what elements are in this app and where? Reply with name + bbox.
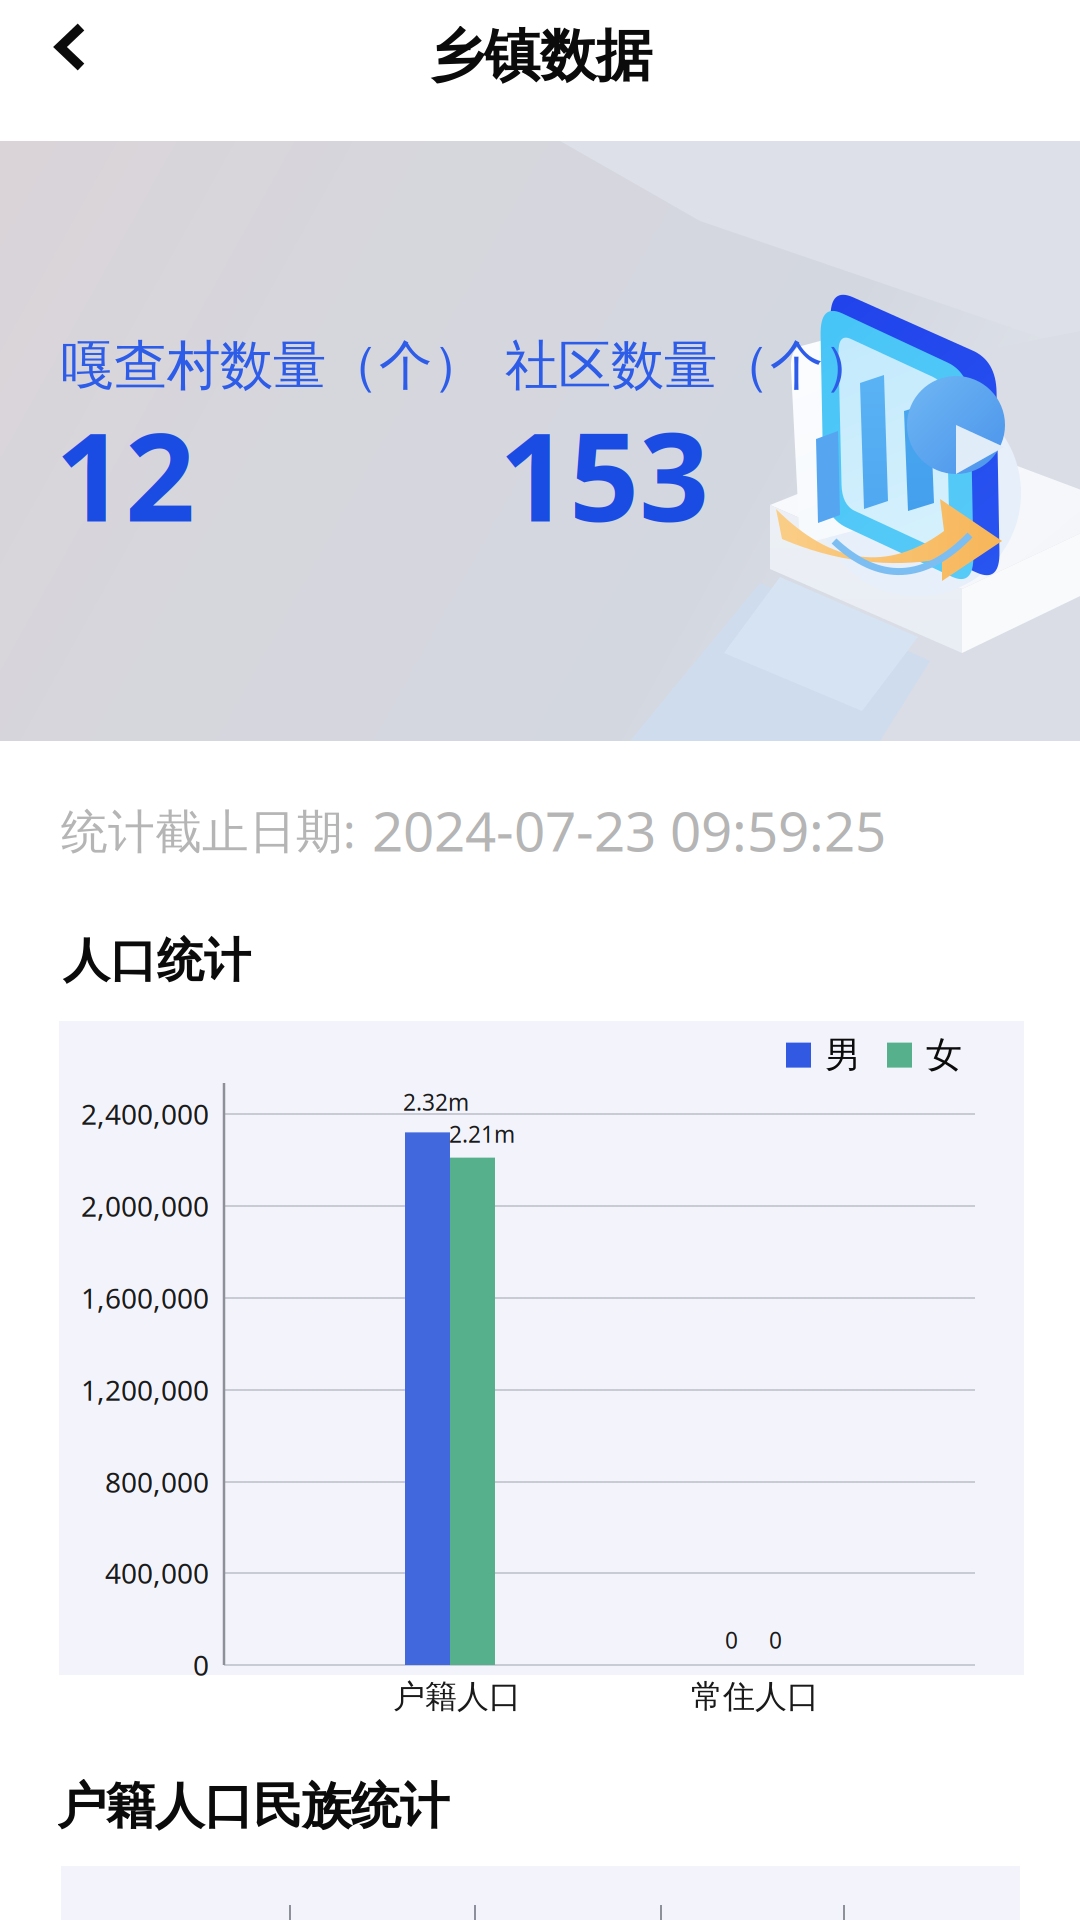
staticText: 800,000 bbox=[105, 1463, 209, 1501]
staticText: 女 bbox=[926, 1033, 962, 1077]
staticText: 常住人口 bbox=[691, 1677, 819, 1716]
staticText: 1,200,000 bbox=[81, 1371, 209, 1409]
staticText: 0 bbox=[193, 1646, 209, 1684]
staticText: 嘎查村数量（个） bbox=[61, 333, 485, 398]
staticText: 统计截止日期: bbox=[61, 799, 356, 861]
staticText: 0 bbox=[725, 1625, 738, 1655]
staticText: 社区数量（个） bbox=[505, 333, 876, 398]
staticText: 0 bbox=[769, 1625, 782, 1655]
staticText: 乡镇数据 bbox=[428, 22, 652, 90]
staticText: 2.21m bbox=[449, 1119, 515, 1149]
staticText: 户籍人口 bbox=[393, 1677, 521, 1716]
staticText: 2,000,000 bbox=[81, 1187, 209, 1225]
staticText: 人口统计 bbox=[63, 932, 251, 989]
staticText: 2024-07-23 09:59:25 bbox=[372, 794, 886, 867]
staticText: 153 bbox=[499, 392, 709, 555]
button[interactable]: Back bbox=[0, 0, 127, 118]
staticText: 2,400,000 bbox=[81, 1095, 209, 1133]
staticText: 1,600,000 bbox=[81, 1279, 209, 1317]
staticText: 400,000 bbox=[105, 1554, 209, 1592]
staticText: 12 bbox=[55, 392, 195, 555]
staticText: 户籍人口民族统计 bbox=[57, 1776, 449, 1837]
staticText: 男 bbox=[825, 1033, 861, 1077]
staticText: 2.32m bbox=[403, 1087, 469, 1117]
